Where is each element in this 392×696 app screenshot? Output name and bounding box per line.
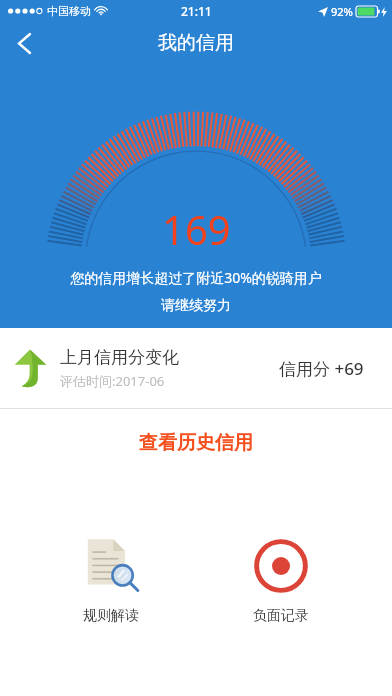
staticText: 21:11 <box>181 3 212 19</box>
staticText: 92% <box>331 4 353 19</box>
button[interactable]: 负面记录 <box>221 533 341 629</box>
staticText: 评估时间:2017-06 <box>60 372 165 390</box>
staticText: 查看历史信用 <box>139 431 253 455</box>
staticText: 您的信用增长超过了附近30%的锐骑用户 <box>70 268 322 287</box>
button[interactable]: 返回 <box>0 22 48 64</box>
button[interactable]: 规则解读 <box>51 533 171 629</box>
button[interactable]: 查看历史信用 <box>0 409 392 477</box>
staticText: 169 <box>162 202 231 256</box>
staticText: 负面记录 <box>253 607 309 625</box>
button[interactable]: 上月信用分变化 <box>0 328 392 408</box>
staticText: 信用分 +69 <box>279 357 364 380</box>
staticText: 我的信用 <box>158 31 234 55</box>
staticText: 规则解读 <box>83 607 139 625</box>
staticText: 中国移动 <box>47 4 91 18</box>
staticText: 请继续努力 <box>161 297 231 315</box>
staticText: 上月信用分变化 <box>60 347 179 368</box>
